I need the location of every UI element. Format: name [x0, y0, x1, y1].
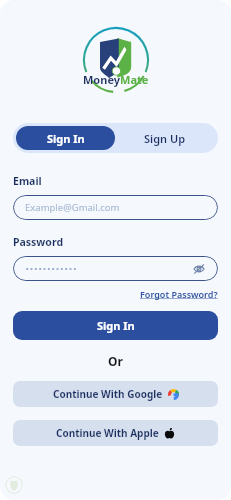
staticText: Sign In: [47, 131, 85, 146]
button[interactable]: Sign In: [13, 311, 218, 340]
staticText: MoneyMate: [83, 72, 149, 87]
button[interactable]: Continue With Google: [13, 381, 218, 407]
staticText: Example@Gmail.com: [25, 201, 120, 214]
staticText: Forgot Password?: [140, 288, 218, 300]
button[interactable]: Example@Gmail.com: [13, 195, 218, 220]
button[interactable]: Show password: [13, 256, 218, 281]
staticText: Sign Up: [144, 131, 186, 146]
button[interactable]: Show password: [191, 261, 206, 276]
staticText: Sign In: [97, 318, 135, 333]
button[interactable]: Sign In: [16, 126, 115, 150]
button[interactable]: Forgot Password?: [140, 288, 218, 300]
staticText: Continue With Apple: [56, 426, 159, 440]
staticText: Or: [108, 353, 123, 369]
button[interactable]: Sign Up: [115, 126, 215, 150]
button[interactable]: Continue With Apple: [13, 420, 218, 446]
staticText: Password: [13, 235, 64, 249]
staticText: Continue With Google: [53, 387, 163, 401]
staticText: Email: [13, 174, 42, 188]
